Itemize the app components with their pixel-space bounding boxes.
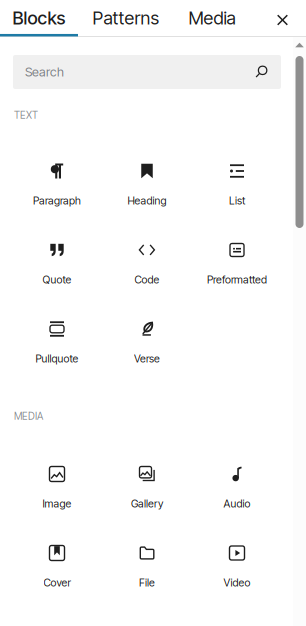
- staticText: Quote: [42, 273, 71, 286]
- button[interactable]: Paragraph: [12, 156, 102, 212]
- button[interactable]: Video: [192, 538, 282, 594]
- staticText: Verse: [134, 352, 160, 365]
- staticText: File: [139, 576, 155, 589]
- staticText: Search: [25, 64, 64, 80]
- staticText: Patterns: [92, 7, 159, 29]
- staticText: Preformatted: [207, 273, 267, 286]
- button[interactable]: Patterns: [82, 0, 170, 36]
- button[interactable]: Image: [12, 459, 102, 515]
- button[interactable]: Verse: [102, 314, 192, 370]
- staticText: List: [229, 194, 245, 207]
- staticText: Gallery: [131, 497, 163, 510]
- button[interactable]: List: [192, 156, 282, 212]
- button[interactable]: Pullquote: [12, 314, 102, 370]
- staticText: MEDIA: [14, 410, 43, 422]
- staticText: Heading: [127, 194, 166, 207]
- button[interactable]: File: [102, 538, 192, 594]
- staticText: Blocks: [12, 7, 65, 29]
- button[interactable]: Blocks: [0, 0, 78, 36]
- button[interactable]: Quote: [12, 235, 102, 291]
- button[interactable]: Preformatted: [192, 235, 282, 291]
- button[interactable]: Gallery: [102, 459, 192, 515]
- button[interactable]: Code: [102, 235, 192, 291]
- button[interactable]: Close: [265, 3, 299, 37]
- button[interactable]: Heading: [102, 156, 192, 212]
- staticText: Paragraph: [33, 194, 81, 207]
- staticText: Image: [42, 497, 71, 510]
- staticText: Audio: [223, 497, 250, 510]
- button[interactable]: Cover: [12, 538, 102, 594]
- staticText: Media: [188, 7, 235, 29]
- button[interactable]: Audio: [192, 459, 282, 515]
- button[interactable]: Search: [13, 55, 281, 89]
- staticText: Cover: [43, 576, 70, 589]
- staticText: Video: [223, 576, 250, 589]
- staticText: Pullquote: [35, 352, 78, 365]
- staticText: Code: [134, 273, 159, 286]
- staticText: TEXT: [14, 109, 38, 121]
- button[interactable]: Media: [171, 0, 253, 36]
